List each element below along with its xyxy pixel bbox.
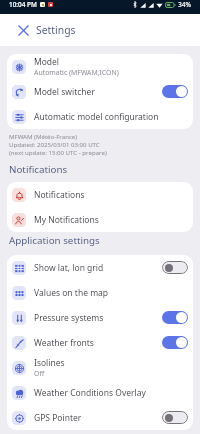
button[interactable]: Toggle	[162, 85, 188, 98]
staticText: 34%	[178, 0, 192, 9]
button[interactable]: Model switcher	[7, 79, 193, 104]
staticText: MFWAM (Météo-France)	[9, 132, 78, 140]
button[interactable]: Pressure systems	[7, 305, 193, 330]
button[interactable]: Isolines	[7, 355, 193, 380]
staticText: Updated: 2025/03/01 03:00 UTC	[9, 140, 100, 148]
button[interactable]: GPS Pointer	[7, 405, 193, 430]
staticText: 10:04 PM	[9, 0, 37, 9]
staticText: Notifications	[9, 163, 68, 176]
button[interactable]: Notifications	[7, 182, 193, 207]
staticText: Values on the map	[34, 287, 109, 299]
staticText: Automatic (MFWAM,ICON)	[34, 68, 119, 77]
staticText: Settings	[36, 23, 76, 37]
button[interactable]: Close	[14, 21, 32, 39]
staticText: My Notifications	[34, 214, 99, 226]
button[interactable]: Values on the map	[7, 280, 193, 305]
staticText: Model switcher	[34, 86, 95, 98]
staticText: (next update: 15:00 UTC - prepare)	[9, 148, 107, 156]
staticText: Isolines	[34, 357, 65, 369]
staticText: Weather fronts	[34, 337, 94, 349]
staticText: Automatic model configuration	[34, 111, 159, 123]
staticText: Pressure systems	[34, 312, 104, 324]
staticText: Show lat, lon grid	[34, 262, 104, 274]
staticText: GPS Pointer	[34, 412, 82, 424]
staticText: Model	[34, 56, 60, 68]
staticText: Weather Conditions Overlay	[34, 387, 146, 399]
button[interactable]: Weather fronts	[7, 330, 193, 355]
button[interactable]: Toggle	[162, 261, 188, 274]
button[interactable]: Toggle	[162, 411, 188, 424]
button[interactable]: Weather Conditions Overlay	[7, 380, 193, 405]
button[interactable]: Toggle	[162, 311, 188, 324]
button[interactable]: My Notifications	[7, 207, 193, 232]
button[interactable]: Show lat, lon grid	[7, 255, 193, 280]
staticText: Application settings	[9, 234, 100, 247]
button[interactable]: Automatic model configuration	[7, 104, 193, 129]
staticText: Notifications	[34, 189, 85, 201]
button[interactable]: Toggle	[162, 336, 188, 349]
button[interactable]: Model	[7, 54, 193, 79]
staticText: Off	[34, 369, 45, 378]
